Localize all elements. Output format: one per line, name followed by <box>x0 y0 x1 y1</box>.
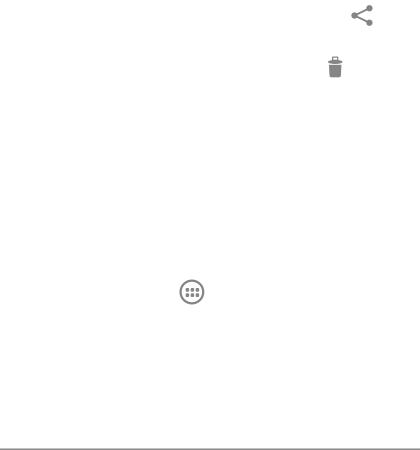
button[interactable]: All apps <box>172 272 212 312</box>
button[interactable]: Delete <box>320 51 351 82</box>
button[interactable]: Share <box>346 0 377 31</box>
